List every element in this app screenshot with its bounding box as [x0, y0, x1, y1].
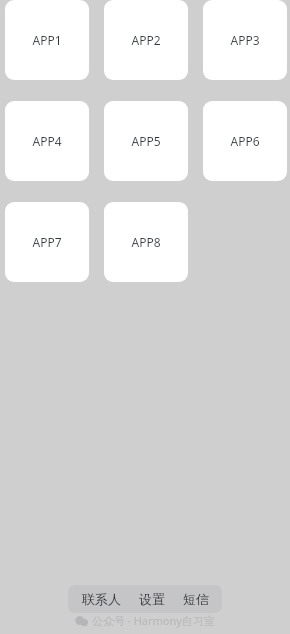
- staticText: APP7: [32, 234, 62, 250]
- other: WeChat: [75, 616, 88, 626]
- staticText: APP6: [230, 133, 260, 149]
- staticText: 短信: [183, 591, 209, 607]
- button[interactable]: APP4: [5, 101, 89, 181]
- button[interactable]: APP5: [104, 101, 188, 181]
- button[interactable]: APP8: [104, 202, 188, 282]
- staticText: APP3: [230, 32, 260, 48]
- staticText: APP5: [131, 133, 161, 149]
- button[interactable]: APP7: [5, 202, 89, 282]
- staticText: APP2: [131, 32, 161, 48]
- staticText: APP4: [32, 133, 62, 149]
- button[interactable]: 短信: [177, 586, 215, 612]
- button[interactable]: 联系人: [76, 586, 127, 612]
- staticText: APP1: [32, 32, 62, 48]
- button[interactable]: APP2: [104, 0, 188, 80]
- staticText: 设置: [139, 591, 165, 607]
- button[interactable]: 设置: [133, 586, 171, 612]
- button[interactable]: APP3: [203, 0, 287, 80]
- button[interactable]: APP6: [203, 101, 287, 181]
- staticText: APP8: [131, 234, 161, 250]
- staticText: 公众号 · Harmony自习室: [92, 613, 215, 628]
- button[interactable]: APP1: [5, 0, 89, 80]
- staticText: 联系人: [82, 591, 121, 607]
